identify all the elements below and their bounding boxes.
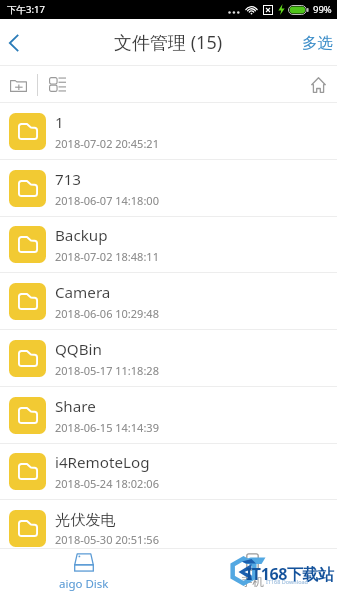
button[interactable]: aigo Disk <box>0 548 168 599</box>
staticText: 文件管理 (15) <box>114 30 223 55</box>
button[interactable]: 多选 <box>292 20 337 66</box>
staticText: 手机 <box>241 575 264 589</box>
button[interactable]: Backup <box>0 217 337 273</box>
staticText: 多选 <box>302 33 333 53</box>
staticText: 2018-06-07 14:18:00 <box>55 193 159 208</box>
staticText: 99% <box>313 3 332 16</box>
staticText: 2018-07-02 18:48:11 <box>55 249 159 264</box>
staticText: Camera <box>55 282 111 303</box>
staticText: i4RemoteLog <box>55 452 150 473</box>
button[interactable]: Camera <box>0 273 337 330</box>
staticText: Share <box>55 396 96 417</box>
button[interactable]: 1 <box>0 103 337 160</box>
staticText: 2018-05-30 20:51:56 <box>55 532 159 547</box>
button[interactable]: i4RemoteLog <box>0 444 337 500</box>
staticText: 光伏发电 <box>55 510 116 529</box>
staticText: IT168 Download <box>266 578 308 585</box>
button[interactable]: Share <box>0 387 337 444</box>
staticText: 2018-07-02 20:45:21 <box>55 136 159 151</box>
button[interactable]: 光伏发电 <box>0 500 337 548</box>
staticText: 2018-05-24 18:02:06 <box>55 476 159 491</box>
staticText: IT168下载站 <box>246 563 334 585</box>
staticText: 2018-06-15 14:14:39 <box>55 420 159 435</box>
button[interactable]: 713 <box>0 160 337 217</box>
staticText: Backup <box>55 225 108 246</box>
button[interactable]: List view <box>38 66 78 103</box>
button[interactable]: Back <box>0 20 28 66</box>
staticText: 2018-06-06 10:29:48 <box>55 306 159 321</box>
button[interactable]: QQBin <box>0 330 337 387</box>
staticText: aigo Disk <box>59 576 109 592</box>
staticText: 713 <box>55 169 82 190</box>
button[interactable]: Home <box>299 66 337 103</box>
staticText: 下午3:17 <box>7 3 45 16</box>
staticText: 1 <box>55 112 64 133</box>
button[interactable]: 手机 <box>168 548 337 599</box>
button[interactable]: New folder <box>0 66 37 103</box>
staticText: QQBin <box>55 339 102 360</box>
staticText: 2018-05-17 11:18:28 <box>55 363 159 378</box>
